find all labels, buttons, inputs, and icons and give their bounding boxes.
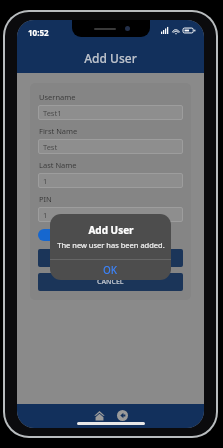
staticText: Add User xyxy=(88,223,134,237)
staticText: 10:52 xyxy=(28,27,49,38)
staticText: 1 xyxy=(43,176,48,186)
staticText: Username xyxy=(39,92,76,102)
button[interactable]: 1 xyxy=(38,207,183,222)
staticText: OK xyxy=(103,263,118,277)
button[interactable]: 1 xyxy=(38,173,183,188)
button[interactable]: Toggle xyxy=(38,229,63,241)
staticText: Test1 xyxy=(43,108,62,118)
button[interactable]: Test xyxy=(38,139,183,154)
staticText: Test xyxy=(43,142,58,152)
button[interactable]: CANCEL xyxy=(38,273,183,291)
button[interactable]: ADD USER xyxy=(38,249,183,267)
button[interactable]: Test1 xyxy=(38,105,183,120)
staticText: Last Name xyxy=(39,160,77,170)
staticText: First Name xyxy=(39,126,78,136)
staticText: The new user has been added. xyxy=(57,240,165,250)
staticText: PIN xyxy=(39,194,52,204)
staticText: 1 xyxy=(43,210,48,220)
staticText: Add User xyxy=(84,50,137,66)
button[interactable]: OK xyxy=(50,260,171,280)
button[interactable]: Home xyxy=(91,407,107,423)
staticText: ADD USER xyxy=(94,253,128,263)
staticText: CANCEL xyxy=(97,277,124,287)
button[interactable]: Back xyxy=(114,407,130,423)
